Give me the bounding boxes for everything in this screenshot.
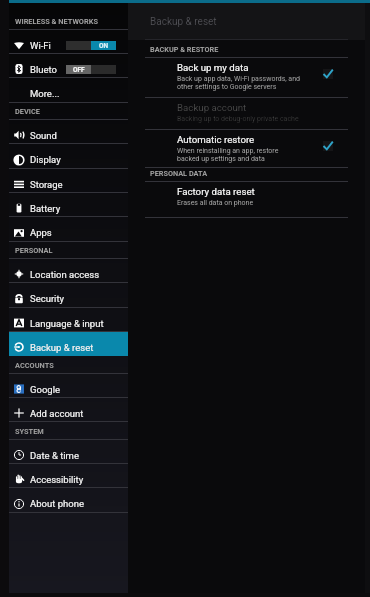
staticText: Google (30, 384, 60, 395)
button[interactable]: On (66, 41, 116, 50)
staticText: PERSONAL DATA (150, 169, 208, 178)
button[interactable]: Back up my data (323, 58, 344, 98)
button[interactable]: About phone (9, 488, 128, 513)
staticText: Factory data reset (177, 186, 255, 197)
staticText: PERSONAL (15, 246, 53, 255)
staticText: Location access (30, 269, 100, 280)
staticText: BACKUP & RESTORE (150, 45, 219, 54)
staticText: Backing up to debug-only private cache (177, 115, 299, 123)
button[interactable]: Language & input (9, 308, 128, 332)
staticText: Security (30, 293, 65, 304)
staticText: Back up app data, Wi-Fi passwords, and (177, 75, 300, 83)
button[interactable]: Add account (9, 398, 128, 422)
button[interactable]: Sound (9, 120, 128, 144)
staticText: WIRELESS & NETWORKS (15, 17, 98, 26)
staticText: About phone (30, 498, 84, 509)
button[interactable]: Factory data reset (128, 182, 365, 218)
staticText: Automatic restore (177, 134, 255, 145)
staticText: ON (99, 42, 109, 50)
button[interactable]: Google (9, 374, 128, 398)
staticText: Battery (30, 203, 61, 214)
button[interactable]: Accessibility (9, 464, 128, 488)
staticText: OFF (73, 66, 85, 74)
staticText: backed up settings and data (177, 155, 265, 163)
staticText: Apps (30, 227, 52, 238)
staticText: Storage (30, 179, 63, 190)
staticText: Backup account (177, 102, 247, 113)
button[interactable]: Automatic restore (128, 130, 365, 168)
staticText: Date & time (30, 450, 79, 461)
button[interactable]: More... (9, 78, 128, 103)
staticText: DEVICE (15, 107, 40, 116)
staticText: ACCOUNTS (15, 361, 54, 370)
button[interactable]: Bluetooth (9, 54, 128, 78)
staticText: Accessibility (30, 474, 84, 485)
staticText: Back up my data (177, 62, 249, 73)
staticText: Bluetooth (30, 64, 57, 75)
button[interactable]: Wi-Fi (9, 30, 128, 54)
staticText: SYSTEM (15, 427, 44, 436)
button[interactable]: Display (9, 144, 128, 169)
button[interactable]: Back up my data (128, 58, 365, 98)
staticText: Language & input (30, 318, 104, 329)
button[interactable]: Backup account (128, 98, 365, 130)
button[interactable]: Automatic restore (323, 130, 344, 168)
staticText: More... (30, 88, 60, 99)
staticText: Backup & reset (150, 16, 217, 28)
button[interactable]: Location access (9, 259, 128, 283)
staticText: Display (30, 154, 61, 165)
staticText: When reinstalling an app, restore (177, 147, 279, 155)
staticText: Erases all data on phone (177, 199, 254, 207)
button[interactable]: Date & time (9, 440, 128, 464)
staticText: Add account (30, 408, 84, 419)
button[interactable]: Battery (9, 193, 128, 217)
button[interactable]: Backup & reset (9, 332, 128, 356)
staticText: Wi-Fi (30, 40, 57, 51)
button[interactable]: Apps (9, 217, 128, 242)
button[interactable]: Security (9, 283, 128, 308)
staticText: Sound (30, 130, 57, 141)
staticText: other settings to Google servers (177, 83, 277, 91)
button[interactable]: Storage (9, 169, 128, 193)
button[interactable]: Off (66, 65, 116, 74)
staticText: Backup & reset (30, 342, 94, 353)
